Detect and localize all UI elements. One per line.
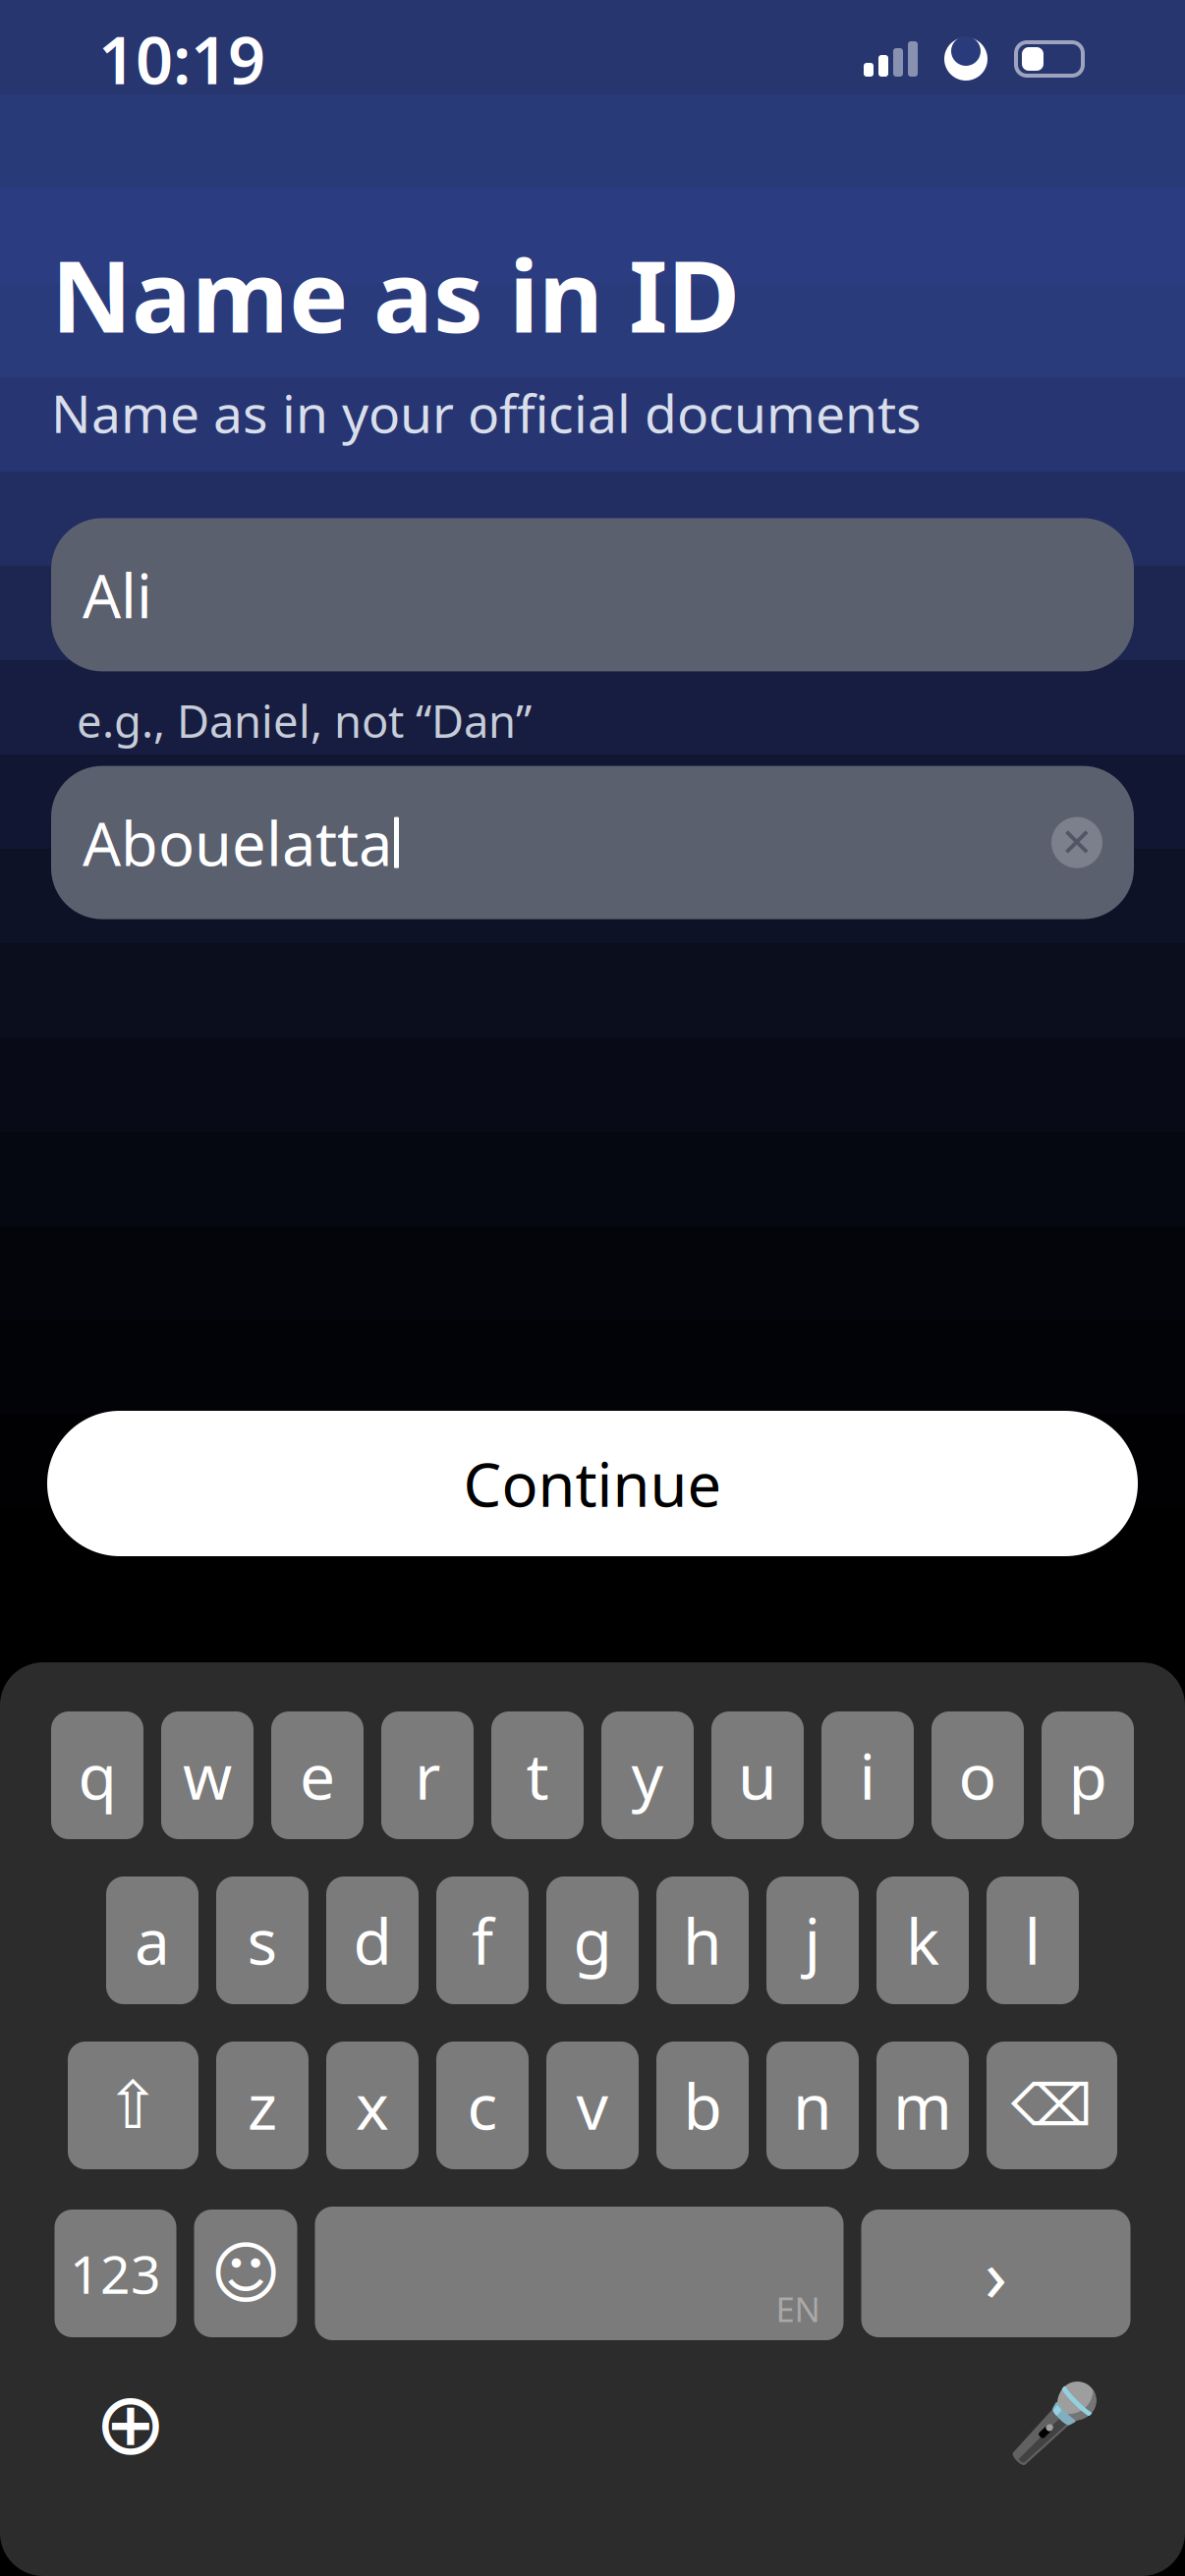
button[interactable]: Space xyxy=(315,2207,844,2340)
button[interactable]: v xyxy=(546,2042,639,2169)
staticText: v xyxy=(576,2064,609,2147)
staticText: k xyxy=(906,1899,939,1982)
button[interactable]: u xyxy=(711,1711,804,1839)
staticText: w xyxy=(183,1734,232,1817)
staticText: Continue xyxy=(463,1444,722,1523)
staticText: u xyxy=(738,1734,777,1817)
staticText: j xyxy=(804,1899,821,1982)
button[interactable]: z xyxy=(216,2042,309,2169)
button[interactable]: Dictation xyxy=(1010,2380,1099,2468)
button[interactable]: k xyxy=(876,1876,969,2004)
staticText: p xyxy=(1069,1734,1107,1817)
staticText: c xyxy=(467,2064,498,2147)
staticText: s xyxy=(247,1899,278,1982)
button[interactable]: j xyxy=(766,1876,859,2004)
staticText: e xyxy=(300,1734,335,1817)
button[interactable]: b xyxy=(656,2042,749,2169)
staticText: EN xyxy=(776,2286,820,2331)
staticText: h xyxy=(683,1899,722,1982)
staticText: d xyxy=(353,1899,392,1982)
button[interactable]: g xyxy=(546,1876,639,2004)
button[interactable]: Shift xyxy=(68,2042,198,2169)
staticText: 🎤 xyxy=(1007,2380,1101,2467)
button[interactable]: f xyxy=(436,1876,529,2004)
staticText: Name as in your official documents xyxy=(51,378,922,447)
button[interactable]: q xyxy=(51,1711,143,1839)
staticText: ⇧ xyxy=(106,2068,161,2143)
staticText: › xyxy=(985,2225,1007,2322)
button[interactable]: 123 xyxy=(55,2210,176,2337)
button[interactable]: Ali xyxy=(51,518,1134,671)
button[interactable]: Delete xyxy=(987,2042,1117,2169)
staticText: b xyxy=(683,2064,722,2147)
button[interactable]: Emoji xyxy=(194,2210,297,2337)
button[interactable]: Next keyboard xyxy=(86,2380,175,2468)
button[interactable]: m xyxy=(876,2042,969,2169)
staticText: Ali xyxy=(83,555,152,635)
staticText: r xyxy=(415,1734,440,1817)
button[interactable]: o xyxy=(931,1711,1024,1839)
staticText: Name as in ID xyxy=(51,228,740,360)
button[interactable]: e xyxy=(271,1711,364,1839)
staticText: a xyxy=(135,1899,170,1982)
button[interactable]: c xyxy=(436,2042,529,2169)
button[interactable]: w xyxy=(161,1711,254,1839)
button[interactable]: Return xyxy=(861,2210,1130,2337)
staticText: ⊕ xyxy=(94,2375,167,2473)
button[interactable]: Continue xyxy=(47,1411,1138,1556)
staticText: 10:19 xyxy=(98,15,265,102)
staticText: e.g., Daniel, not “Dan” xyxy=(77,691,532,750)
button[interactable]: y xyxy=(601,1711,694,1839)
button[interactable]: a xyxy=(106,1876,198,2004)
button[interactable]: i xyxy=(821,1711,914,1839)
button[interactable]: t xyxy=(491,1711,584,1839)
staticText: q xyxy=(78,1734,116,1817)
button[interactable]: d xyxy=(326,1876,419,2004)
button[interactable]: n xyxy=(766,2042,859,2169)
staticText: y xyxy=(631,1734,664,1817)
staticText: Abouelatta xyxy=(83,803,392,883)
staticText: ✕ xyxy=(1060,820,1094,865)
button[interactable]: s xyxy=(216,1876,309,2004)
staticText: ⌫ xyxy=(1011,2073,1093,2138)
staticText: g xyxy=(573,1899,612,1982)
staticText: 123 xyxy=(70,2239,161,2308)
button[interactable]: x xyxy=(326,2042,419,2169)
staticText: x xyxy=(356,2064,389,2147)
staticText: z xyxy=(248,2064,277,2147)
staticText: t xyxy=(526,1734,549,1817)
button[interactable]: l xyxy=(987,1876,1079,2004)
button[interactable]: r xyxy=(381,1711,474,1839)
staticText: f xyxy=(472,1899,493,1982)
staticText: n xyxy=(793,2064,832,2147)
button[interactable]: h xyxy=(656,1876,749,2004)
staticText: i xyxy=(859,1734,876,1817)
staticText: ☺ xyxy=(210,2235,281,2312)
staticText: l xyxy=(1024,1899,1041,1982)
button[interactable]: p xyxy=(1042,1711,1134,1839)
staticText: m xyxy=(893,2064,952,2147)
staticText: o xyxy=(959,1734,997,1817)
button[interactable]: Abouelatta xyxy=(51,766,1134,919)
